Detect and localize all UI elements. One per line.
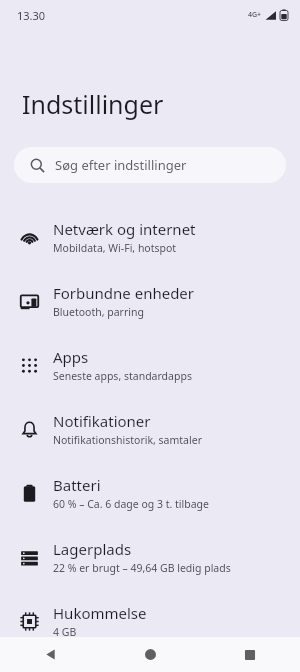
staticText: Notifikationshistorik, samtaler [53, 433, 202, 447]
staticText: Mobildata, Wi-Fi, hotspot [53, 241, 177, 255]
button[interactable]: Apps [0, 333, 300, 397]
button[interactable]: Lagerplads [0, 525, 300, 589]
button[interactable]: Recent apps [200, 637, 300, 672]
staticText: 60 % – Ca. 6 dage og 3 t. tilbage [53, 497, 209, 511]
staticText: 4 GB [53, 625, 77, 639]
button[interactable]: Hukommelse [0, 589, 300, 653]
button[interactable]: Home [100, 637, 200, 672]
staticText: Seneste apps, standardapps [53, 369, 192, 383]
staticText: Batteri [53, 475, 101, 495]
staticText: Forbundne enheder [53, 283, 195, 303]
staticText: Netværk og internet [53, 219, 196, 239]
staticText: 22 % er brugt – 49,64 GB ledig plads [53, 561, 231, 575]
staticText: Notifikationer [53, 411, 151, 431]
button[interactable]: Forbundne enheder [0, 269, 300, 333]
button[interactable]: Søg efter indstillinger [14, 147, 286, 183]
staticText: Søg efter indstillinger [55, 156, 187, 174]
staticText: Hukommelse [53, 603, 147, 623]
staticText: Apps [53, 347, 89, 367]
staticText: 4G+ [248, 10, 262, 20]
staticText: Bluetooth, parring [53, 305, 144, 319]
button[interactable]: Netværk og internet [0, 205, 300, 269]
button[interactable]: Notifikationer [0, 397, 300, 461]
button[interactable]: Batteri [0, 461, 300, 525]
staticText: Indstillinger [22, 87, 164, 121]
staticText: 13.30 [17, 8, 46, 23]
button[interactable]: Back [0, 637, 100, 672]
staticText: Lagerplads [53, 539, 132, 559]
